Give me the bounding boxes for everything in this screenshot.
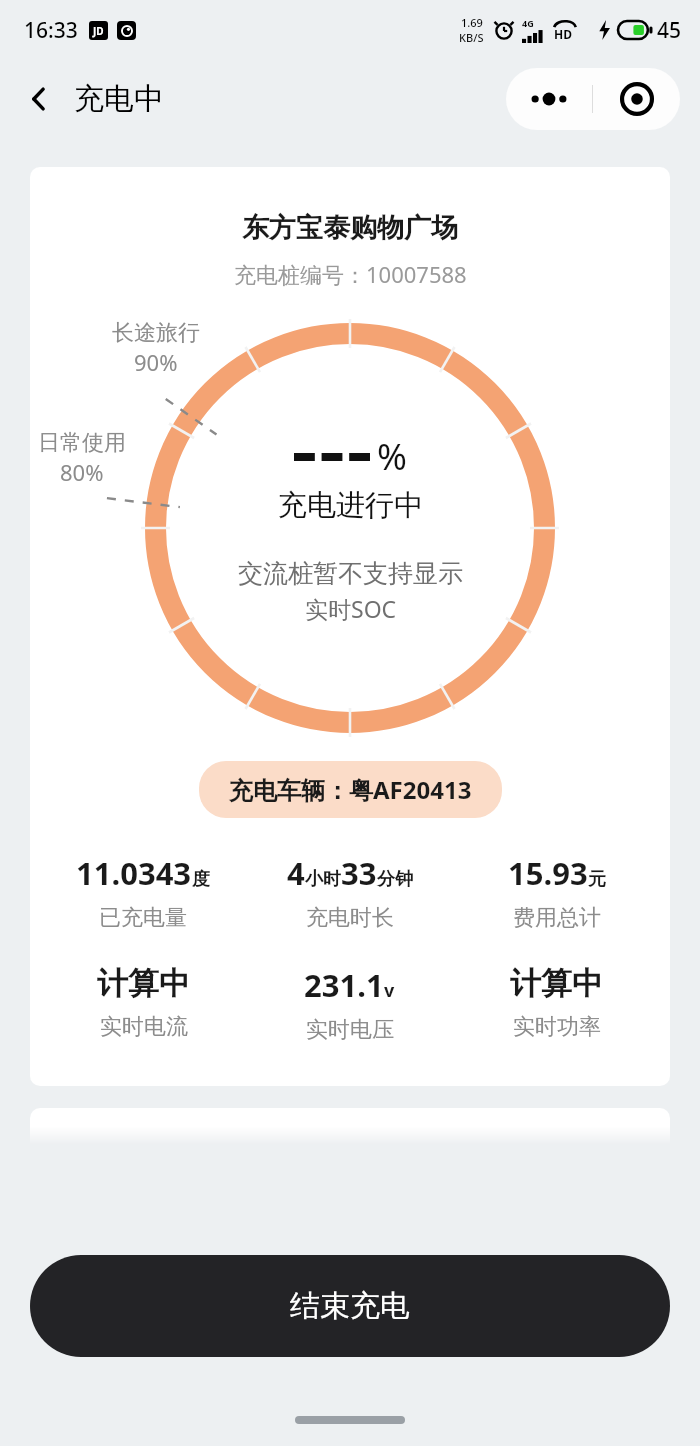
- staticText: 交流桩暂不支持显示: [238, 558, 463, 589]
- staticText: KB/S: [459, 30, 484, 45]
- other: Back: [22, 82, 56, 116]
- staticText: 已充电量: [99, 904, 187, 932]
- staticText: 实时功率: [513, 1013, 601, 1041]
- button[interactable]: 结束充电: [30, 1255, 670, 1357]
- staticText: 4: [287, 852, 305, 894]
- staticText: 充电桩编号：10007588: [234, 259, 467, 289]
- staticText: 80%: [60, 457, 104, 487]
- staticText: 实时电流: [100, 1013, 188, 1041]
- staticText: 结束充电: [290, 1287, 410, 1325]
- staticText: 东方宝泰购物广场: [242, 211, 458, 245]
- staticText: 长途旅行: [112, 319, 200, 347]
- staticText: 1.69: [461, 15, 483, 30]
- staticText: 4G: [522, 17, 534, 29]
- staticText: 计算中: [510, 964, 603, 1003]
- staticText: 充电中: [74, 80, 164, 118]
- staticText: 充电进行中: [278, 487, 423, 524]
- staticText: 费用总计: [513, 904, 601, 932]
- staticText: %: [377, 432, 407, 481]
- staticText: 元: [588, 868, 606, 891]
- button[interactable]: Close mini program: [593, 68, 680, 130]
- button[interactable]: Back: [0, 70, 176, 128]
- staticText: HD: [554, 26, 572, 42]
- staticText: 实时SOC: [305, 593, 397, 624]
- staticText: 45: [657, 16, 682, 45]
- staticText: 231.1: [304, 964, 384, 1006]
- staticText: 充电时长: [306, 904, 394, 932]
- staticText: 15.93: [508, 852, 588, 894]
- staticText: 充电车辆：粤AF20413: [229, 773, 472, 806]
- staticText: 小时: [305, 868, 341, 891]
- staticText: 实时电压: [306, 1016, 394, 1044]
- staticText: 度: [192, 868, 210, 891]
- staticText: 33: [341, 852, 377, 894]
- button[interactable]: More options: [506, 68, 592, 130]
- staticText: 16:33: [24, 16, 78, 45]
- button[interactable]: 充电车辆：粤AF20413: [199, 761, 502, 818]
- staticText: 计算中: [97, 964, 190, 1003]
- staticText: 11.0343: [76, 852, 192, 894]
- staticText: v: [384, 978, 395, 1003]
- staticText: JD: [93, 24, 104, 38]
- staticText: 日常使用: [38, 429, 126, 457]
- staticText: 90%: [134, 347, 178, 377]
- staticText: 分钟: [377, 868, 413, 891]
